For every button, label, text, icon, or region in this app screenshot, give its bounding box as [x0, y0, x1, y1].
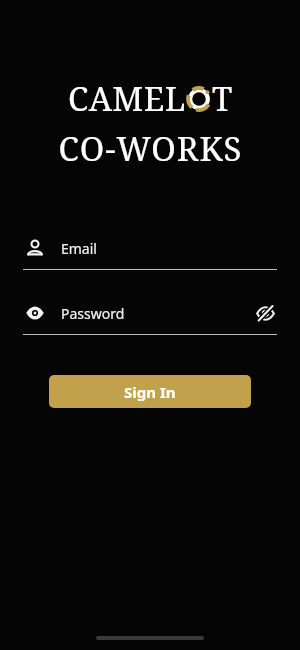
button[interactable]: Sign In — [49, 375, 251, 408]
staticText: Password — [61, 304, 253, 323]
staticText: Sign In — [124, 382, 176, 402]
staticText: CAMEL — [68, 76, 186, 121]
button[interactable]: Toggle password visibility — [253, 301, 277, 325]
staticText: T — [212, 76, 233, 121]
staticText: CO-WORKS — [58, 126, 243, 171]
staticText: Email — [61, 239, 277, 258]
other: Account — [23, 236, 47, 260]
button[interactable]: Password — [23, 298, 277, 335]
other: Password — [23, 301, 47, 325]
button[interactable]: Account — [23, 233, 277, 270]
